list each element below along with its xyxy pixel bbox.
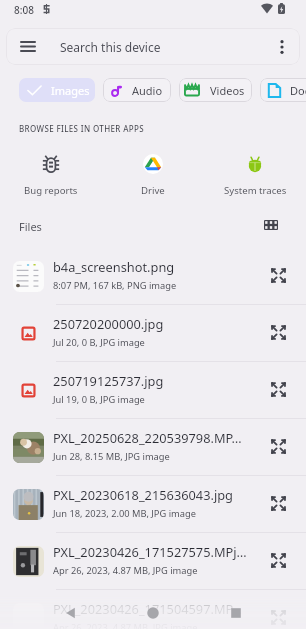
button[interactable]: PXL_20230426_171504597.MP… — [0, 590, 306, 629]
button[interactable]: Home — [141, 601, 165, 625]
button[interactable]: Doc — [260, 78, 306, 102]
button[interactable]: 250719125737.jpg — [0, 362, 306, 419]
button[interactable]: Expand — [268, 493, 288, 513]
staticText: Jun 28, 8.15 MB, JPG image — [53, 450, 170, 463]
button[interactable]: Images — [19, 78, 95, 102]
staticText: b4a_screenshot.png — [53, 258, 175, 275]
button[interactable]: Expand — [268, 550, 288, 570]
button[interactable]: b4a_screenshot.png — [0, 248, 306, 305]
staticText: System traces — [224, 184, 287, 197]
button[interactable]: Recent apps — [224, 601, 248, 625]
button[interactable]: System traces — [204, 154, 306, 197]
button[interactable]: PXL_20230618_215636043.jpg — [0, 476, 306, 533]
staticText: 250720200000.jpg — [53, 315, 164, 332]
staticText: PXL_20230426_171504597.MP… — [53, 600, 242, 617]
button[interactable]: Drive — [102, 154, 204, 197]
staticText: 8:07 PM, 167 kB, PNG image — [53, 279, 177, 292]
button[interactable]: Videos — [179, 78, 252, 102]
staticText: Search this device — [60, 39, 161, 55]
button[interactable]: PXL_20230426_171527575.MPj… — [0, 533, 306, 590]
staticText: Videos — [210, 83, 245, 98]
staticText: Doc — [290, 83, 306, 98]
button[interactable]: Expand — [268, 379, 288, 399]
staticText: Jul 20, 0 B, JPG image — [53, 336, 145, 349]
button[interactable]: Audio — [103, 78, 171, 102]
button[interactable]: Grid view — [262, 218, 279, 232]
staticText: Jul 19, 0 B, JPG image — [53, 393, 145, 406]
staticText: Apr 26, 2023, 4.87 MB, JPG image — [53, 564, 198, 577]
staticText: PXL_20250628_220539798.MP… — [53, 429, 242, 446]
staticText: PXL_20230618_215636043.jpg — [53, 486, 233, 503]
button[interactable]: Expand — [268, 436, 288, 456]
button[interactable]: PXL_20250628_220539798.MP… — [0, 419, 306, 476]
button[interactable]: 250720200000.jpg — [0, 305, 306, 362]
staticText: 8:08 — [14, 3, 34, 17]
staticText: Bug reports — [24, 184, 78, 197]
button[interactable]: Expand — [268, 607, 288, 627]
staticText: Drive — [141, 184, 165, 197]
button[interactable]: Bug reports — [0, 154, 102, 197]
button[interactable]: Search this device — [6, 28, 300, 65]
staticText: Files — [19, 219, 42, 234]
button[interactable]: More options — [271, 36, 293, 58]
button[interactable]: Back — [59, 601, 83, 625]
staticText: 250719125737.jpg — [53, 372, 164, 389]
staticText: Images — [51, 83, 90, 98]
staticText: PXL_20230426_171527575.MPj… — [53, 543, 247, 560]
staticText: Audio — [132, 83, 163, 98]
button[interactable]: Expand — [268, 265, 288, 285]
staticText: Jun 18, 2023, 2.00 MB, JPG image — [53, 507, 196, 520]
button[interactable]: Expand — [268, 322, 288, 342]
staticText: BROWSE FILES IN OTHER APPS — [19, 123, 144, 134]
